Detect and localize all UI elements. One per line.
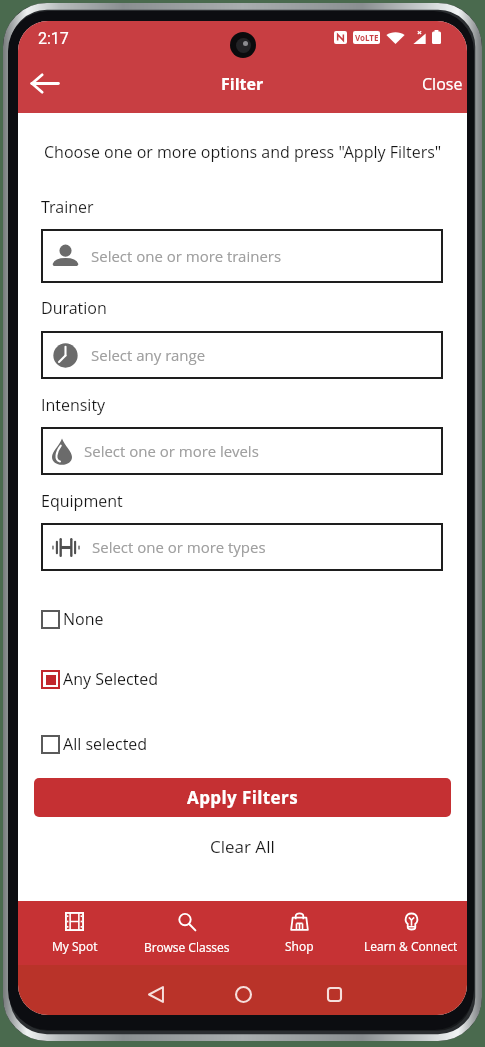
- button[interactable]: Learn & Connect: [355, 901, 467, 965]
- staticText: Select one or more trainers: [91, 246, 282, 266]
- button[interactable]: Apply Filters: [34, 778, 451, 817]
- staticText: Filter: [221, 73, 264, 95]
- button[interactable]: All selected: [18, 723, 467, 765]
- staticText: Select one or more types: [92, 537, 266, 557]
- staticText: Apply Filters: [187, 786, 299, 809]
- button[interactable]: Clear All: [18, 829, 467, 863]
- staticText: Select one or more levels: [84, 441, 259, 461]
- button[interactable]: Select one or more types: [41, 523, 443, 571]
- staticText: Intensity: [41, 394, 106, 416]
- staticText: Learn & Connect: [364, 938, 458, 954]
- staticText: Close: [422, 73, 463, 95]
- staticText: My Spot: [52, 938, 98, 954]
- button[interactable]: Close: [412, 67, 467, 101]
- button[interactable]: Select one or more levels: [41, 427, 443, 475]
- staticText: 2:17: [38, 29, 69, 48]
- staticText: Clear All: [210, 835, 275, 858]
- button[interactable]: None: [18, 598, 467, 640]
- button[interactable]: Any Selected: [18, 658, 467, 700]
- staticText: Any Selected: [63, 668, 158, 690]
- staticText: Shop: [285, 938, 314, 954]
- button[interactable]: Back: [20, 59, 68, 107]
- staticText: Choose one or more options and press "Ap…: [44, 141, 442, 163]
- staticText: Select any range: [91, 345, 206, 365]
- button[interactable]: Shop: [243, 901, 355, 965]
- staticText: Trainer: [41, 196, 94, 218]
- button[interactable]: My Spot: [18, 901, 131, 965]
- button[interactable]: Back: [136, 974, 176, 1014]
- button[interactable]: Select one or more trainers: [41, 229, 443, 283]
- button[interactable]: Home: [223, 974, 263, 1014]
- staticText: Equipment: [41, 490, 123, 512]
- staticText: Duration: [41, 297, 107, 319]
- staticText: Browse Classes: [144, 939, 230, 955]
- button[interactable]: Select any range: [41, 331, 443, 379]
- staticText: None: [63, 608, 104, 630]
- button[interactable]: Recents: [314, 974, 354, 1014]
- staticText: All selected: [63, 733, 148, 755]
- staticText: VoLTE: [355, 32, 379, 43]
- button[interactable]: Browse Classes: [131, 901, 243, 965]
